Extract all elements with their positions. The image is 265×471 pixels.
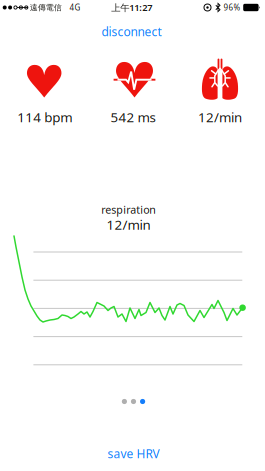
staticText: 4G xyxy=(69,2,80,13)
staticText: save HRV xyxy=(107,445,159,461)
button[interactable]: disconnect xyxy=(101,23,161,39)
staticText: 12/min xyxy=(198,108,242,126)
staticText: 12/min xyxy=(106,216,150,233)
staticText: 遠傳電信 xyxy=(30,3,62,12)
button[interactable]: save HRV xyxy=(107,445,159,461)
staticText: 542 ms xyxy=(110,108,155,126)
staticText: disconnect xyxy=(101,23,161,39)
staticText: respiration xyxy=(101,202,156,217)
staticText: 96% xyxy=(223,2,240,13)
button[interactable]: Page 3 of 3 xyxy=(122,399,145,404)
staticText: 114 bpm xyxy=(17,108,72,126)
staticText: 上午11:27 xyxy=(111,1,152,14)
